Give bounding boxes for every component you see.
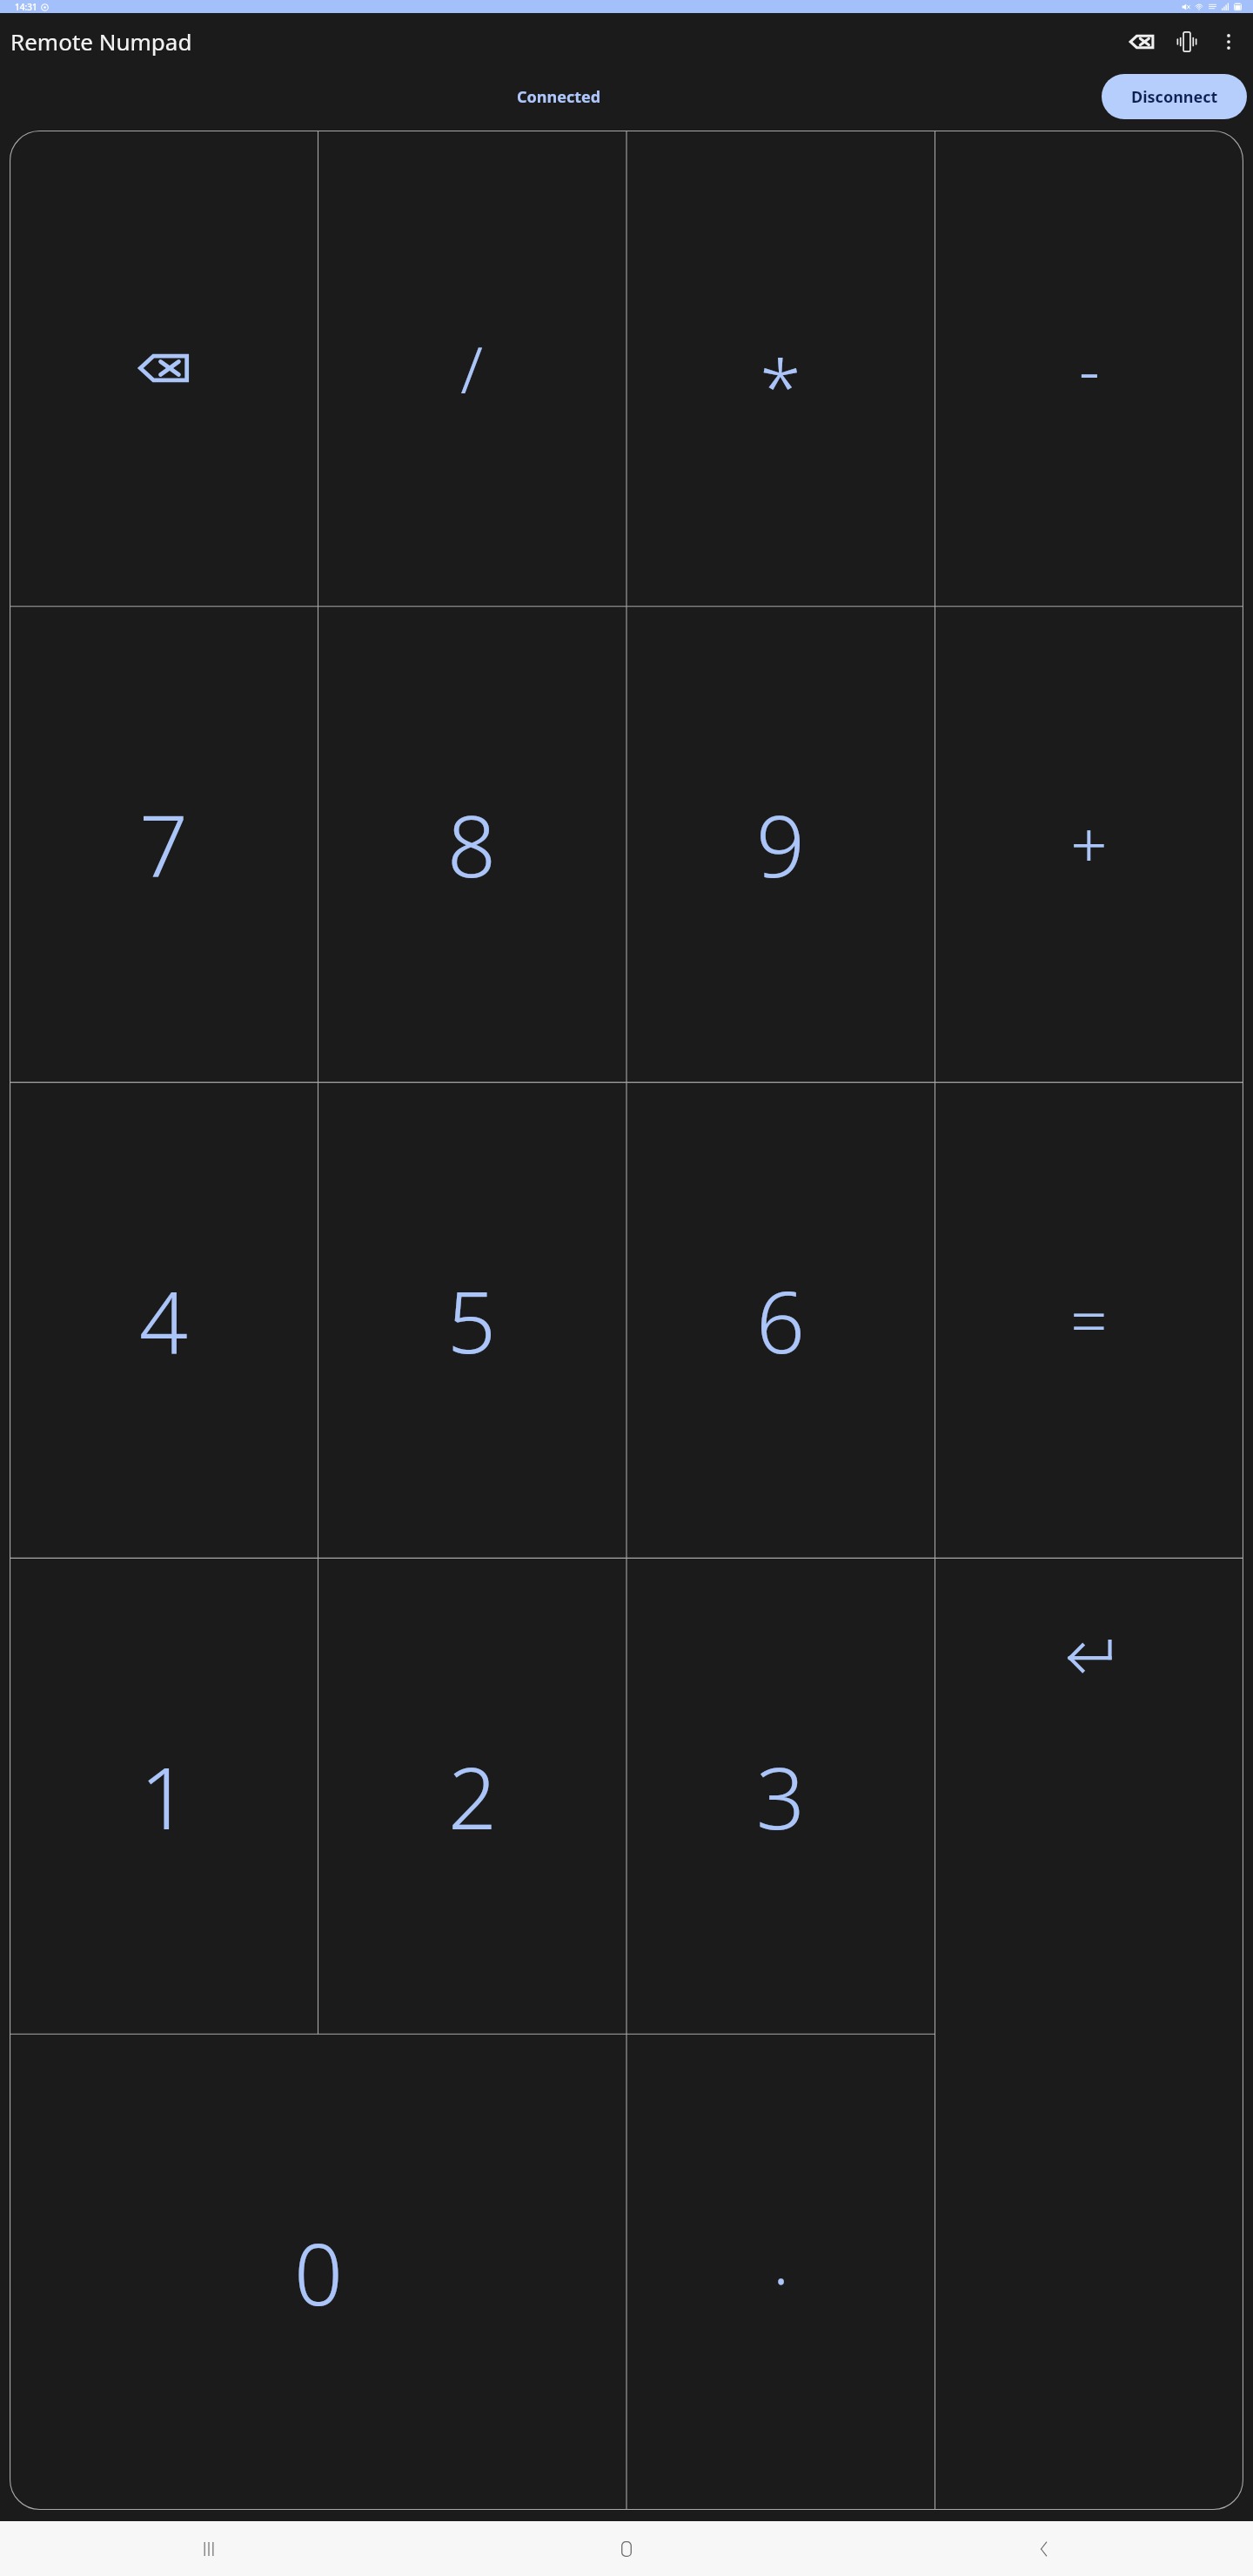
button[interactable]: 1 xyxy=(10,1558,318,2034)
button[interactable]: Enter xyxy=(935,1558,1243,2510)
staticText: 3 xyxy=(756,1738,805,1854)
staticText: 2 xyxy=(448,1738,497,1854)
button[interactable]: Equals xyxy=(935,1082,1243,1558)
button[interactable]: 2 xyxy=(318,1558,626,2034)
staticText: / xyxy=(460,325,483,413)
button[interactable]: Vibrate xyxy=(1168,23,1206,61)
staticText: Connected xyxy=(517,86,601,108)
staticText: - xyxy=(1079,325,1100,413)
staticText: 5 xyxy=(447,1262,496,1378)
button[interactable]: 6 xyxy=(626,1082,935,1558)
staticText: 9 xyxy=(756,786,805,902)
button[interactable]: Divide xyxy=(318,131,626,606)
button[interactable]: Backspace xyxy=(1122,23,1161,61)
button[interactable]: 4 xyxy=(10,1082,318,1558)
staticText: 1 xyxy=(140,1738,189,1854)
button[interactable]: Decimal point xyxy=(626,2034,935,2510)
staticText: 4 xyxy=(139,1262,188,1378)
button[interactable]: More options xyxy=(1211,24,1246,59)
button[interactable]: 7 xyxy=(10,606,318,1082)
staticText: 6 xyxy=(756,1262,805,1378)
staticText: 8 xyxy=(447,786,496,902)
staticText: + xyxy=(1070,800,1108,888)
button[interactable]: Home xyxy=(418,2521,835,2576)
staticText: Disconnect xyxy=(1131,86,1218,108)
button[interactable]: Minus xyxy=(935,131,1243,606)
button[interactable]: 5 xyxy=(318,1082,626,1558)
button[interactable]: Disconnect xyxy=(1102,74,1247,119)
staticText: . xyxy=(773,2216,789,2304)
staticText: * xyxy=(760,335,801,437)
staticText: = xyxy=(1070,1276,1108,1364)
button[interactable]: 3 xyxy=(626,1558,935,2034)
button[interactable]: Backspace xyxy=(10,131,318,606)
button[interactable]: Multiply xyxy=(626,131,935,606)
button[interactable]: 9 xyxy=(626,606,935,1082)
button[interactable]: 0 xyxy=(10,2034,626,2510)
staticText: Remote Numpad xyxy=(10,26,192,57)
button[interactable]: 8 xyxy=(318,606,626,1082)
button[interactable]: Connected xyxy=(517,86,601,108)
button[interactable]: Plus xyxy=(935,606,1243,1082)
staticText: 7 xyxy=(139,786,188,902)
staticText: 0 xyxy=(294,2214,343,2330)
staticText: 14:31 xyxy=(15,1,37,13)
button[interactable]: Recent apps xyxy=(0,2521,418,2576)
button[interactable]: Back xyxy=(835,2521,1253,2576)
